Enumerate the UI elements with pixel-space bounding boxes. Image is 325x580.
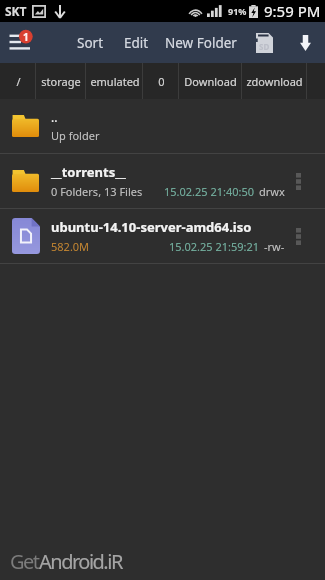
button[interactable]: New Folder [164,26,238,60]
button[interactable]: More options [287,154,309,208]
staticText: SKT [5,3,27,19]
staticText: Edit [124,34,149,52]
staticText: ubuntu-14.10-server-amd64.iso [51,218,252,236]
staticText: zdownload [246,74,303,89]
staticText: emulated [90,74,140,89]
button[interactable]: Download [179,63,242,99]
button[interactable]: More options [287,209,309,263]
button[interactable]: storage [36,63,86,99]
staticText: Get [10,548,39,575]
staticText: 91% [228,5,247,17]
staticText: / [16,74,21,89]
button[interactable]: Downloads [287,22,323,63]
staticText: SD [259,41,270,52]
button[interactable]: emulated [86,63,143,99]
staticText: -rw- [264,239,285,254]
button[interactable]: 0 [143,63,179,99]
button[interactable]: .. [0,99,325,153]
staticText: Sort [77,34,104,52]
staticText: 0 Folders, 13 Files [51,184,143,199]
staticText: New Folder [165,34,237,52]
staticText: 1 [23,30,29,44]
staticText: 15.02.25 21:59:21 [169,239,260,254]
staticText: 0 [158,74,165,89]
button[interactable]: zdownload [242,63,307,99]
staticText: storage [41,74,81,89]
staticText: 582.0M [51,239,90,254]
button[interactable]: __torrents__ [0,154,325,208]
staticText: Android.iR [39,548,122,575]
button[interactable]: ubuntu-14.10-server-amd64.iso [0,209,325,263]
button[interactable]: Sort [76,26,105,60]
staticText: __torrents__ [51,163,126,181]
staticText: Download [184,74,237,89]
button[interactable]: / [0,63,36,99]
staticText: 9:59 PM [264,1,321,21]
button[interactable]: Edit [123,26,150,60]
button[interactable]: SD card storage [246,22,282,63]
staticText: 15.02.25 21:40:50 [164,184,255,199]
staticText: drwx [259,184,285,199]
staticText: Up folder [51,128,100,143]
button[interactable]: Menu [0,22,44,63]
staticText: .. [51,109,58,125]
